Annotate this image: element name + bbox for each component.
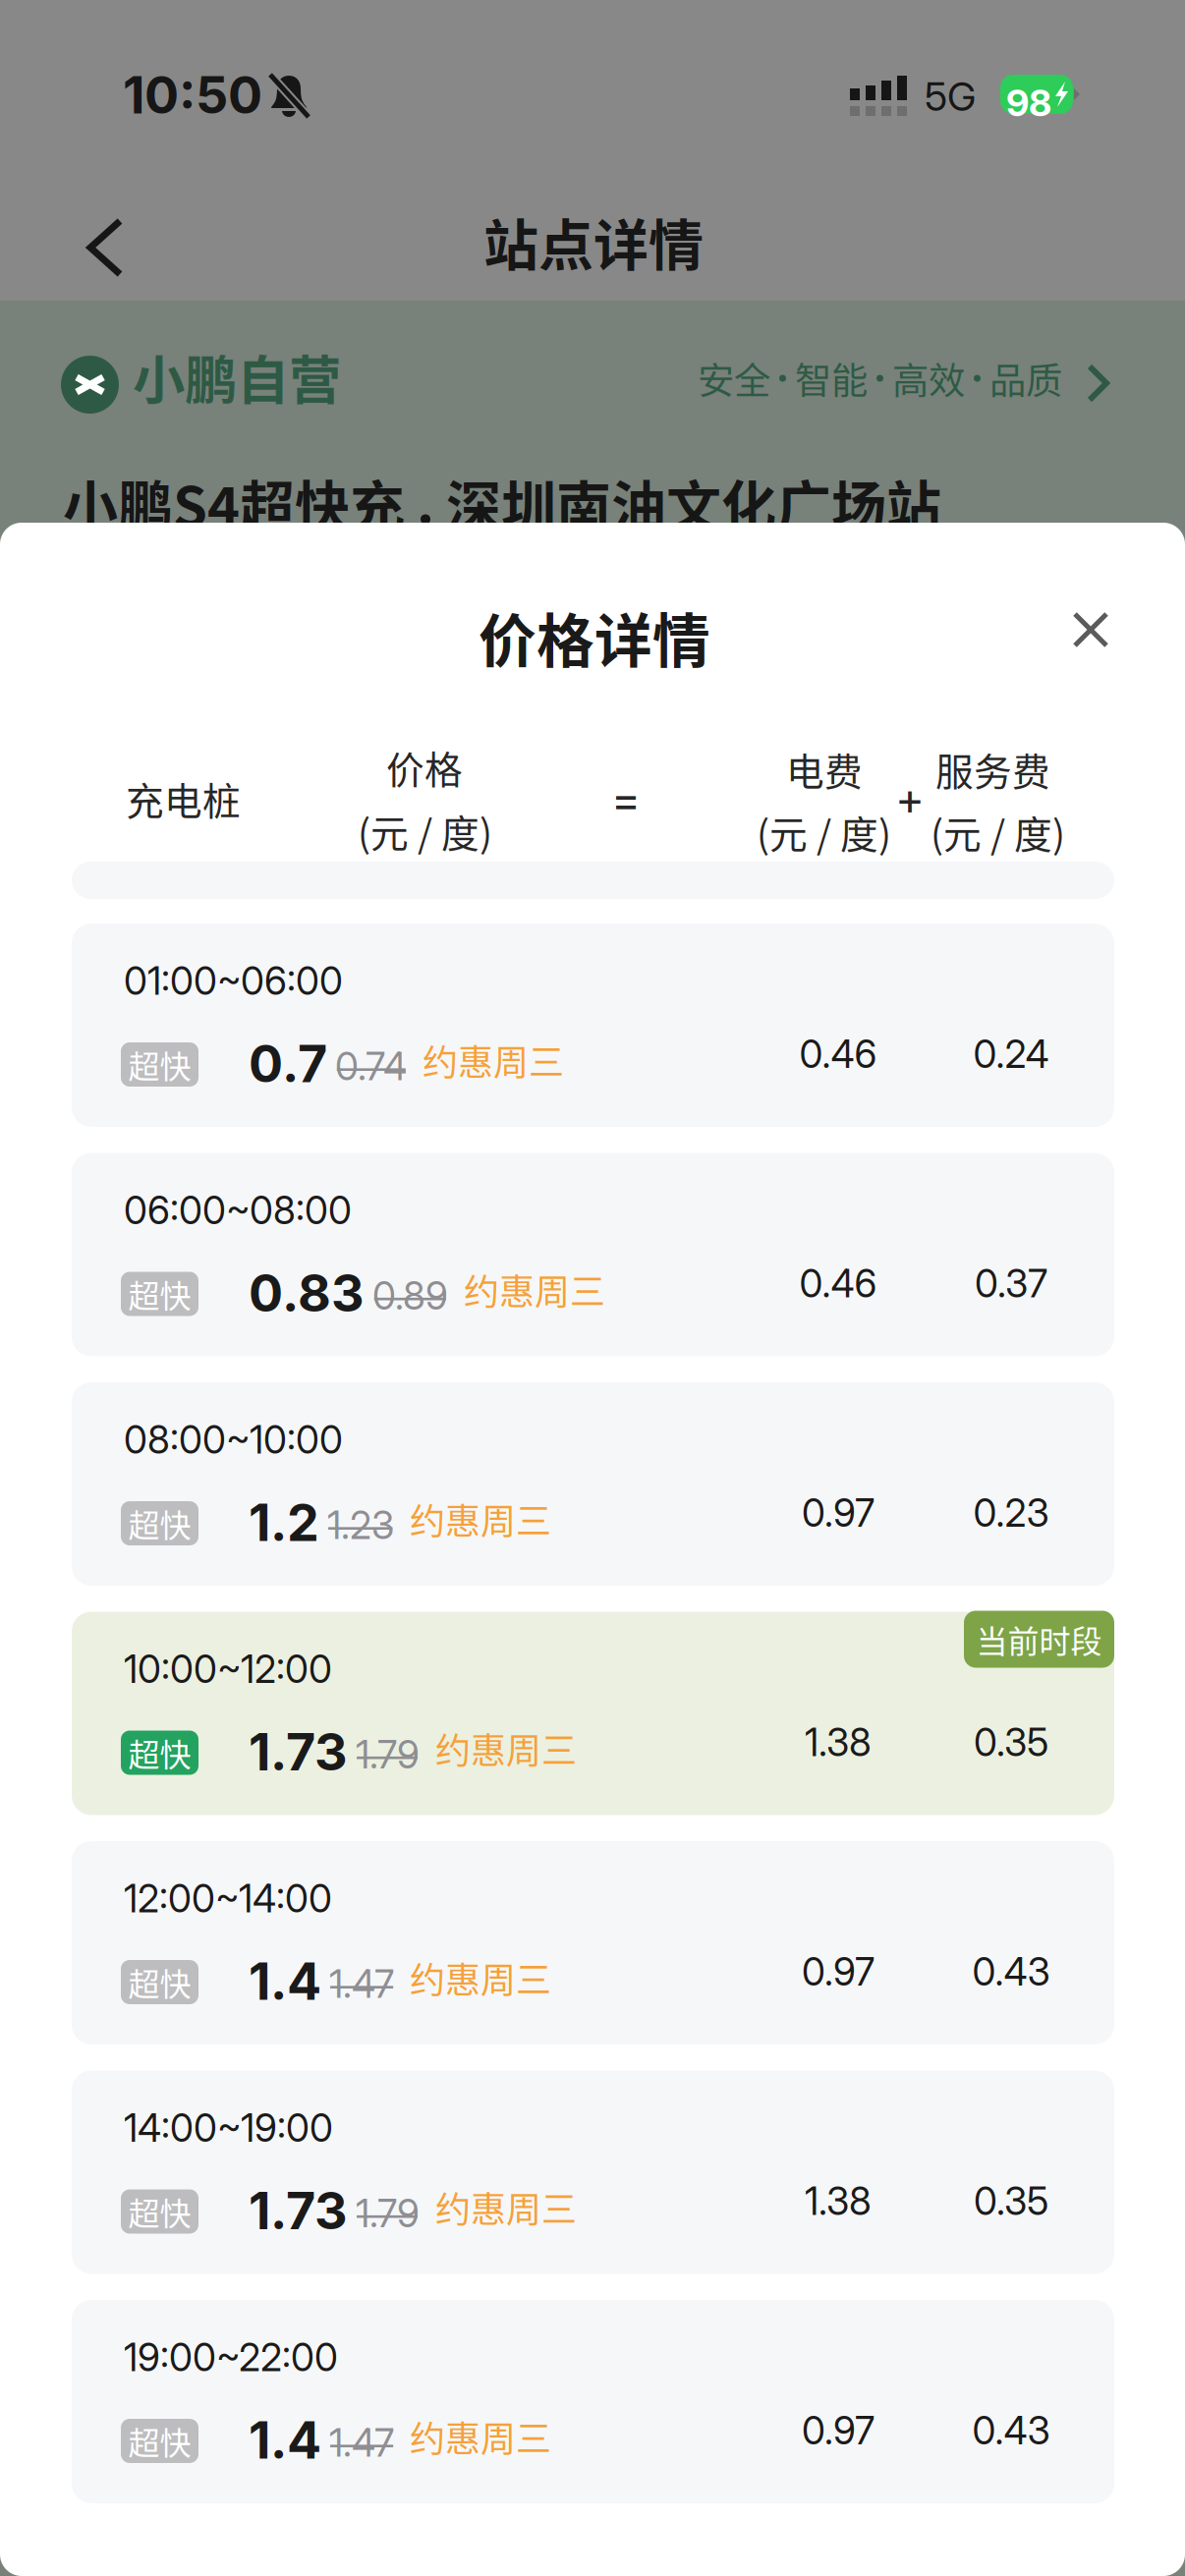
staticText: 1.47 [329,2420,394,2466]
staticText: 约惠周三 [435,1723,577,1774]
staticText: 1.79 [356,2190,420,2236]
staticText: 超快 [128,2418,191,2464]
staticText: 0.37 [975,1261,1047,1307]
button[interactable]: 01:00~06:00 [72,924,1114,1127]
staticText: 12:00~14:00 [124,1876,332,1921]
staticText: 1.4 [249,2409,321,2471]
staticText: 19:00~22:00 [124,2334,338,2380]
staticText: 0.97 [802,2408,875,2454]
staticText: 1.73 [249,1721,348,1783]
staticText: 14:00~19:00 [124,2105,333,2151]
staticText: 1.73 [249,2180,348,2241]
staticText: 98 [1006,81,1051,125]
staticText: (元 / 度) [757,805,891,860]
staticText: 深圳南油文化广场站 [446,463,941,542]
staticText: 1.38 [805,2178,872,2224]
staticText: 08:00~10:00 [124,1417,343,1463]
staticText: 0.35 [974,2178,1048,2224]
staticText: 当前时段 [976,1616,1102,1662]
button[interactable]: 08:00~10:00 [72,1382,1114,1586]
staticText: 1.23 [327,1502,394,1548]
staticText: 0.74 [335,1043,407,1089]
staticText: 超快 [128,1042,191,1087]
staticText: 约惠周三 [464,1264,605,1315]
button[interactable]: 06:00~08:00 [72,1153,1114,1356]
staticText: (元 / 度) [931,805,1065,860]
staticText: 智能 [795,352,868,405]
staticText: 约惠周三 [410,1493,551,1545]
staticText: 超快 [128,1959,191,2005]
staticText: 1.2 [249,1491,319,1553]
button[interactable]: Close [1052,591,1129,668]
staticText: 0.43 [972,1949,1050,1995]
staticText: 约惠周三 [435,2182,577,2233]
staticText: 超快 [128,1501,191,1546]
staticText: 1.47 [329,1961,394,2007]
staticText: 约惠周三 [410,2411,551,2462]
staticText: 小鹏自营 [133,339,341,415]
staticText: 约惠周三 [423,1035,564,1086]
staticText: 约惠周三 [410,1952,551,2003]
staticText: 小鹏S4超快充 [63,463,405,542]
staticText: 06:00~08:00 [124,1187,352,1233]
staticText: 0.43 [972,2408,1050,2454]
staticText: 10:50 [123,64,262,126]
button[interactable]: 14:00~19:00 [72,2071,1114,2274]
staticText: 服务费 [935,742,1050,797]
staticText: 0.35 [974,1719,1048,1765]
staticText: 价格详情 [479,595,710,679]
staticText: 0.97 [802,1949,875,1995]
staticText: 1.38 [805,1719,872,1765]
staticText: 0.7 [249,1033,327,1094]
button[interactable]: Back [59,200,149,295]
staticText: 1.79 [356,1732,420,1778]
staticText: 品质 [989,352,1062,405]
staticText: 0.23 [973,1490,1049,1536]
staticText: 0.89 [372,1273,448,1319]
staticText: 电费 [786,742,863,797]
staticText: 10:00~12:00 [124,1646,332,1692]
staticText: 站点详情 [483,201,704,281]
staticText: 充电桩 [126,771,241,826]
staticText: 1.4 [249,1950,321,2012]
staticText: 0.46 [799,1261,877,1307]
staticText: 高效 [892,352,965,405]
staticText: 超快 [128,1730,191,1775]
staticText: = [611,772,641,826]
staticText: 超快 [128,1271,191,1317]
staticText: 0.24 [973,1031,1049,1077]
button[interactable]: 19:00~22:00 [72,2300,1114,2503]
button[interactable]: 10:00~12:00 [72,1612,1114,1815]
staticText: 安全 [698,352,770,405]
staticText: + [895,771,925,825]
staticText: 0.97 [802,1490,875,1536]
staticText: 0.46 [799,1031,877,1077]
staticText: 价格 [386,740,463,795]
button[interactable]: 12:00~14:00 [72,1841,1114,2044]
staticText: 超快 [128,2189,191,2234]
staticText: 0.83 [249,1262,365,1324]
staticText: (元 / 度) [358,804,492,859]
staticText: 01:00~06:00 [124,958,343,1004]
staticText: 5G [925,73,976,120]
